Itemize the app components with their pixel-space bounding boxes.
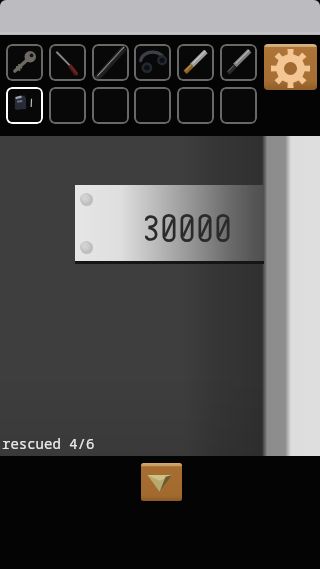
button[interactable]: Inventory slot	[220, 44, 257, 81]
button[interactable]: Settings	[264, 44, 317, 90]
button[interactable]: Inventory slot	[134, 87, 171, 124]
button[interactable]: Inventory slot	[49, 87, 86, 124]
staticText: rescued 4/6	[2, 434, 95, 453]
button[interactable]: Inventory slot	[6, 44, 43, 81]
button[interactable]: Inventory slot	[177, 44, 214, 81]
button[interactable]: Inventory slot	[49, 44, 86, 81]
button[interactable]: Inventory slot	[220, 87, 257, 124]
button[interactable]: Inventory slot	[92, 44, 129, 81]
button[interactable]: Inventory slot	[6, 87, 43, 124]
button[interactable]: Move down	[141, 463, 182, 501]
button[interactable]: Inventory slot	[177, 87, 214, 124]
button[interactable]: Inventory slot	[134, 44, 171, 81]
button[interactable]: Inventory slot	[92, 87, 129, 124]
